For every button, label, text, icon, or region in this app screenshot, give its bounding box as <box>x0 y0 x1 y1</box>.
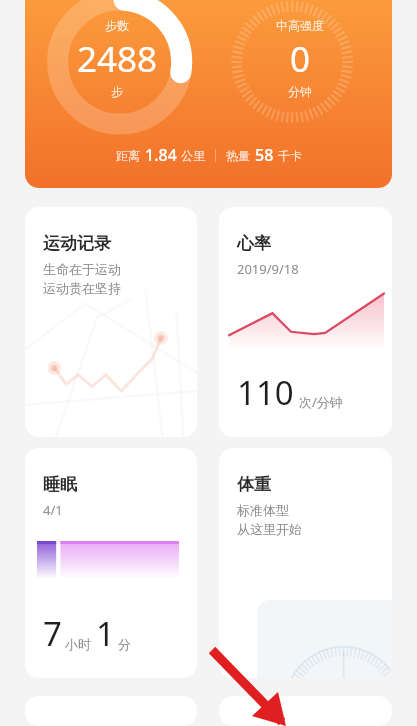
staticText: 运动贵在坚持 <box>43 280 121 296</box>
staticText: 运动记录 <box>43 233 111 254</box>
staticText: 小时 <box>65 636 91 652</box>
button[interactable]: 运动记录 <box>25 207 197 437</box>
staticText: 中高强度 <box>276 18 324 33</box>
button[interactable]: 心率 <box>219 207 392 437</box>
staticText: 0 <box>290 35 311 83</box>
staticText: 体重 <box>237 474 271 495</box>
staticText: 4/1 <box>43 501 63 519</box>
staticText: 1.84 <box>145 144 177 166</box>
staticText: 步 <box>111 84 123 99</box>
button[interactable] <box>219 696 392 726</box>
staticText: 千卡 <box>278 148 302 163</box>
staticText: 分 <box>118 636 131 652</box>
staticText: 标准体型 <box>237 502 289 518</box>
staticText: 7 <box>43 611 62 656</box>
staticText: 睡眠 <box>43 474 77 495</box>
staticText: 心率 <box>237 233 271 254</box>
staticText: 热量 <box>226 148 250 163</box>
staticText: 58 <box>255 144 274 166</box>
staticText: 从这里开始 <box>237 521 302 537</box>
button[interactable]: 体重 <box>219 448 392 678</box>
staticText: 110 <box>237 370 294 415</box>
staticText: 公里 <box>181 148 205 163</box>
staticText: 分钟 <box>288 84 312 99</box>
staticText: 2488 <box>77 35 158 83</box>
staticText: 生命在于运动 <box>43 261 121 277</box>
staticText: 步数 <box>105 18 129 33</box>
staticText: 次/分钟 <box>299 393 343 411</box>
staticText: 距离 <box>116 148 140 163</box>
staticText: 2019/9/18 <box>237 260 299 278</box>
staticText: 1 <box>96 611 115 656</box>
button[interactable]: 睡眠 <box>25 448 197 678</box>
button[interactable]: 步数 <box>25 0 392 188</box>
